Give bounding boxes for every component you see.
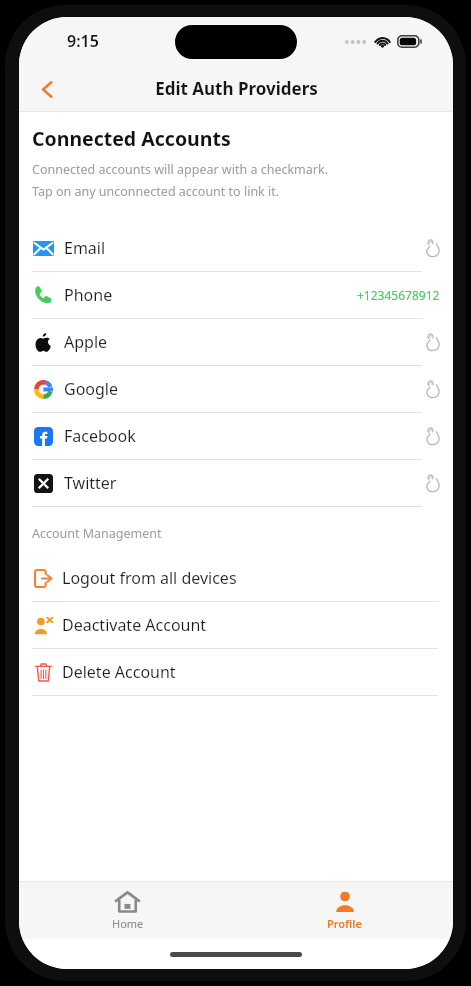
staticText: Deactivate Account (62, 614, 207, 636)
button[interactable]: Deactivate Account (19, 602, 453, 649)
button[interactable]: Email (19, 225, 453, 272)
staticText: Tap on any unconnected account to link i… (32, 183, 280, 200)
staticText: Profile (327, 916, 362, 931)
staticText: Email (64, 237, 106, 259)
staticText: Twitter (64, 472, 117, 494)
staticText: Delete Account (62, 661, 176, 683)
button[interactable]: Profile (236, 882, 453, 939)
staticText: Connected Accounts (32, 125, 231, 152)
staticText: +12345678912 (357, 287, 440, 303)
button[interactable]: Back (25, 67, 69, 111)
button[interactable]: Apple (19, 319, 453, 366)
staticText: Account Management (32, 525, 162, 542)
button[interactable]: Google (19, 366, 453, 413)
button[interactable]: Phone (19, 272, 453, 319)
staticText: Connected accounts will appear with a ch… (32, 161, 328, 178)
button[interactable]: Facebook (19, 413, 453, 460)
button[interactable]: Delete Account (19, 649, 453, 696)
button[interactable]: Home (19, 882, 236, 939)
staticText: Edit Auth Providers (155, 77, 318, 100)
button[interactable]: Logout from all devices (19, 555, 453, 602)
staticText: Logout from all devices (62, 567, 237, 589)
staticText: Facebook (64, 425, 136, 447)
button[interactable]: Twitter (19, 460, 453, 507)
staticText: 9:15 (67, 30, 99, 52)
staticText: Google (64, 378, 119, 400)
staticText: Phone (64, 284, 113, 306)
staticText: Apple (64, 331, 108, 353)
staticText: Home (112, 916, 144, 931)
